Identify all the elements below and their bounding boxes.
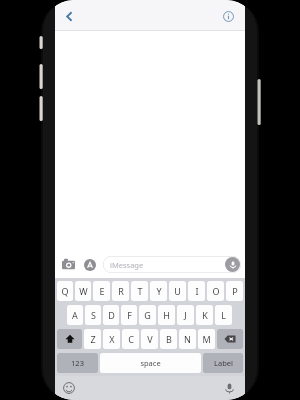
- staticText: Z: [90, 333, 96, 345]
- staticText: M: [202, 333, 211, 345]
- button[interactable]: space: [100, 353, 201, 373]
- button[interactable]: iMessage: [103, 256, 241, 273]
- button[interactable]: Camera: [59, 255, 78, 274]
- staticText: K: [202, 309, 208, 321]
- staticText: I: [195, 285, 199, 297]
- button[interactable]: M: [198, 329, 215, 349]
- button[interactable]: Label: [203, 353, 243, 373]
- button[interactable]: J: [177, 305, 194, 325]
- staticText: P: [232, 285, 238, 297]
- staticText: S: [91, 309, 96, 321]
- button[interactable]: F: [121, 305, 137, 325]
- button[interactable]: L: [215, 305, 232, 325]
- staticText: L: [221, 309, 226, 321]
- button[interactable]: G: [139, 305, 156, 325]
- button[interactable]: N: [179, 329, 196, 349]
- button[interactable]: H: [158, 305, 175, 325]
- button[interactable]: S: [85, 305, 101, 325]
- button[interactable]: K: [196, 305, 213, 325]
- button[interactable]: A: [67, 305, 83, 325]
- button[interactable]: 123: [57, 353, 98, 373]
- staticText: X: [109, 333, 115, 345]
- staticText: N: [184, 333, 191, 345]
- staticText: 123: [71, 358, 84, 368]
- button[interactable]: W: [75, 281, 91, 301]
- button[interactable]: D: [103, 305, 119, 325]
- button[interactable]: Dictation: [220, 379, 238, 397]
- button[interactable]: Shift: [57, 329, 82, 349]
- button[interactable]: U: [169, 281, 186, 301]
- button[interactable]: E: [93, 281, 110, 301]
- button[interactable]: I: [188, 281, 205, 301]
- staticText: H: [163, 309, 170, 321]
- button[interactable]: Backspace: [217, 329, 243, 349]
- staticText: B: [166, 333, 172, 345]
- staticText: D: [108, 309, 115, 321]
- button[interactable]: X: [103, 329, 120, 349]
- button[interactable]: V: [141, 329, 158, 349]
- button[interactable]: Y: [150, 281, 167, 301]
- staticText: E: [99, 285, 105, 297]
- button[interactable]: Z: [84, 329, 101, 349]
- button[interactable]: P: [226, 281, 243, 301]
- button[interactable]: Q: [57, 281, 73, 301]
- button[interactable]: B: [160, 329, 177, 349]
- staticText: T: [137, 285, 143, 297]
- button[interactable]: Emoji: [60, 379, 78, 397]
- button[interactable]: Apps: [80, 255, 99, 274]
- staticText: Q: [61, 285, 69, 297]
- staticText: W: [79, 285, 88, 297]
- button[interactable]: T: [131, 281, 148, 301]
- staticText: J: [184, 309, 187, 321]
- button[interactable]: Back: [56, 3, 82, 29]
- staticText: R: [118, 285, 124, 297]
- staticText: A: [72, 309, 78, 321]
- staticText: V: [147, 333, 153, 345]
- staticText: Y: [156, 285, 162, 297]
- staticText: iMessage: [110, 260, 144, 270]
- button[interactable]: R: [112, 281, 129, 301]
- staticText: C: [128, 333, 134, 345]
- staticText: U: [174, 285, 181, 297]
- staticText: Label: [214, 358, 233, 368]
- staticText: space: [140, 358, 161, 368]
- button[interactable]: Record audio: [225, 257, 240, 272]
- staticText: G: [144, 309, 151, 321]
- staticText: F: [127, 309, 132, 321]
- button[interactable]: Details: [216, 4, 240, 28]
- button[interactable]: C: [122, 329, 139, 349]
- staticText: O: [212, 285, 220, 297]
- button[interactable]: O: [207, 281, 224, 301]
